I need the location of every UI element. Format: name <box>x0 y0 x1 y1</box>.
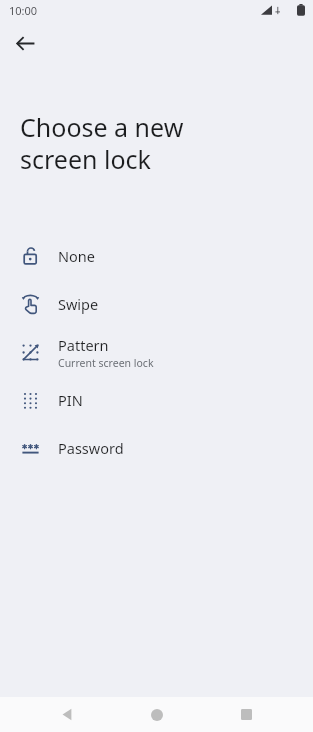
staticText: 10:00 <box>9 3 38 18</box>
staticText: Pattern <box>58 335 109 355</box>
button[interactable]: Password <box>0 424 313 472</box>
button[interactable]: None <box>0 232 313 280</box>
staticText: PIN <box>58 390 83 410</box>
staticText: Choose a new screen lock <box>20 110 293 176</box>
button[interactable]: Back <box>8 26 42 60</box>
button[interactable]: Recent apps <box>224 697 268 732</box>
staticText: Swipe <box>58 294 99 314</box>
staticText: None <box>58 246 95 266</box>
button[interactable]: Pattern <box>0 328 313 376</box>
button[interactable]: Back <box>45 697 89 732</box>
button[interactable]: Home <box>135 697 179 732</box>
staticText: Password <box>58 438 124 458</box>
button[interactable]: Swipe <box>0 280 313 328</box>
button[interactable]: PIN <box>0 376 313 424</box>
staticText: Current screen lock <box>58 356 154 370</box>
